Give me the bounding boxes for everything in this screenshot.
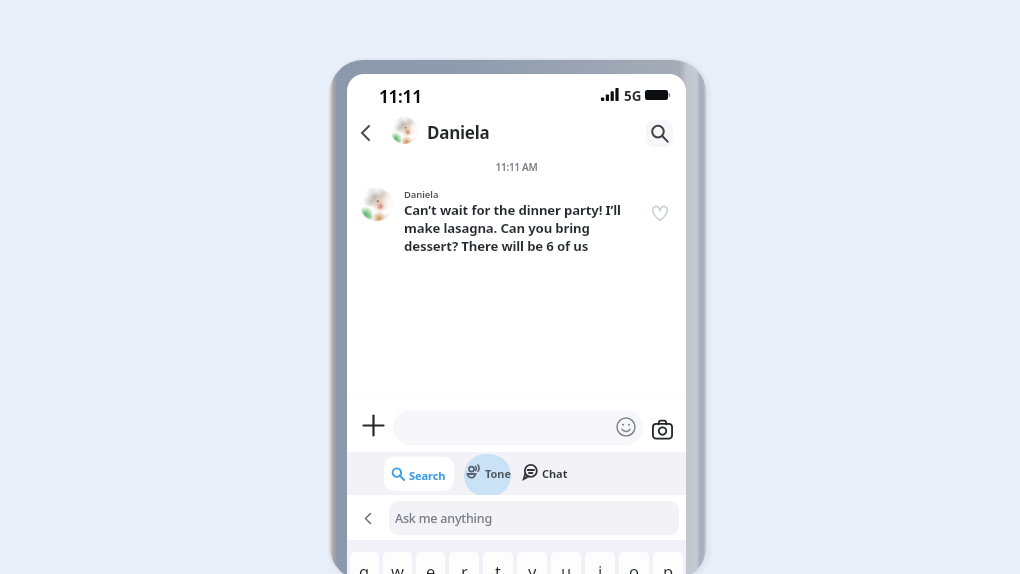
button[interactable]: Like [647,200,673,226]
staticText: e [426,560,436,574]
staticText: Chat [542,466,568,481]
staticText: r [461,560,468,574]
staticText: u [561,560,572,574]
staticText: 11:11 [379,85,422,108]
button[interactable]: Tone [464,460,512,486]
staticText: Daniela [404,188,439,201]
staticText: 11:11 AM [347,160,686,174]
staticText: Can’t wait for the dinner party! I’ll ma… [404,201,639,255]
button[interactable]: u [551,552,581,574]
staticText: p [663,560,674,574]
staticText: o [629,560,639,574]
button[interactable]: Collapse [356,506,380,530]
staticText: w [391,560,404,574]
button[interactable]: e [416,552,445,574]
button[interactable]: q [350,552,379,574]
button[interactable]: o [619,552,649,574]
button[interactable]: Add attachment [360,412,386,438]
button[interactable]: i [585,552,615,574]
button[interactable]: Search [384,457,454,491]
button[interactable]: t [483,552,513,574]
button[interactable]: Back [349,117,381,149]
button[interactable]: Emoji [614,415,638,439]
button[interactable]: y [517,552,547,574]
staticText: t [495,560,501,574]
staticText: Daniela [427,121,490,144]
staticText: q [359,560,370,574]
staticText: Ask me anything [395,510,492,527]
staticText: Search [409,468,446,483]
staticText: i [598,560,603,574]
button[interactable]: Camera [652,419,673,440]
button[interactable]: p [653,552,683,574]
button[interactable]: Search [646,120,673,147]
staticText: 5G [624,87,642,105]
button[interactable]: Ask me anything [389,501,679,535]
staticText: y [528,560,537,574]
button[interactable]: w [383,552,412,574]
button[interactable] [393,410,643,445]
button[interactable]: Chat [520,460,568,486]
button[interactable]: r [449,552,479,574]
staticText: Tone [485,466,511,481]
